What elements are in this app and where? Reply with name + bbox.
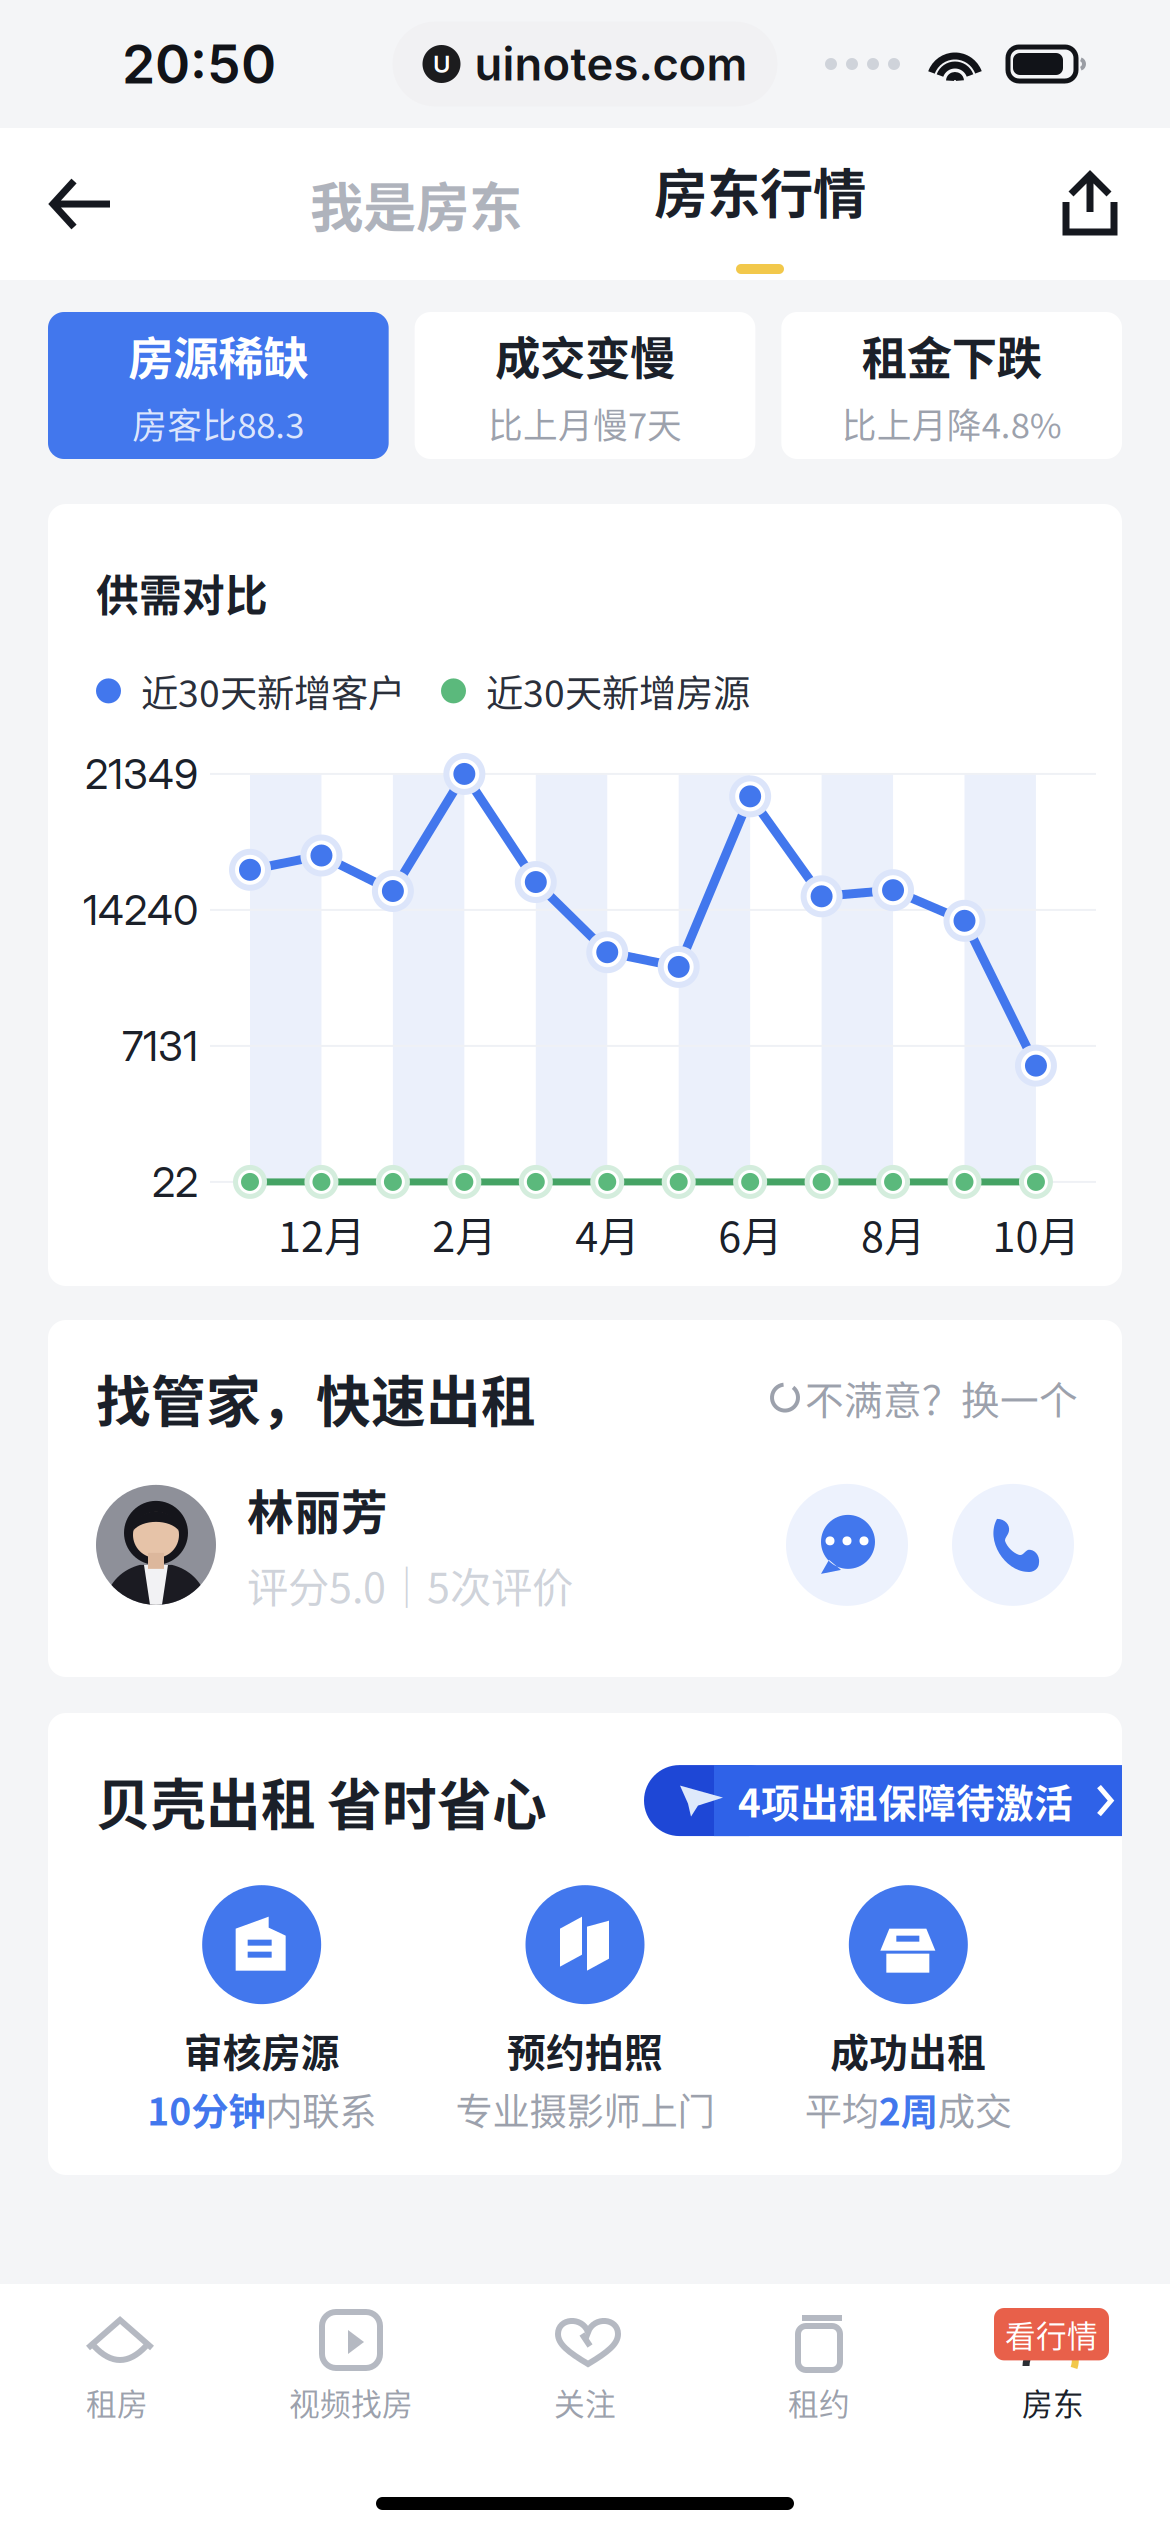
staticText: 成交变慢 bbox=[495, 323, 675, 388]
button[interactable]: 4项出租保障待激活 bbox=[644, 1765, 1122, 1836]
staticText: 平均 bbox=[805, 2082, 879, 2136]
staticText: 21349 bbox=[85, 749, 198, 799]
staticText: 林丽芳 bbox=[247, 1475, 388, 1543]
staticText: 4月 bbox=[575, 1204, 639, 1264]
staticText: 评分5.0｜5次评价 bbox=[247, 1555, 573, 1615]
staticText: 6月 bbox=[718, 1204, 782, 1264]
staticText: 近30天新增客户 bbox=[141, 664, 405, 718]
staticText: 22 bbox=[152, 1157, 198, 1207]
staticText: 2周 bbox=[879, 2082, 938, 2136]
button[interactable]: 不满意？换一个 bbox=[769, 1370, 1078, 1426]
staticText: 比上月降4.8% bbox=[842, 398, 1062, 448]
button[interactable]: 关注 bbox=[468, 2308, 702, 2424]
staticText: 租金下跌 bbox=[862, 323, 1042, 388]
staticText: 房东 bbox=[1022, 2380, 1084, 2424]
staticText: 内联系 bbox=[265, 2082, 376, 2136]
staticText: 8月 bbox=[861, 1204, 925, 1264]
button[interactable]: 房源稀缺 bbox=[48, 312, 389, 459]
staticText: 14240 bbox=[83, 885, 198, 935]
staticText: 比上月慢7天 bbox=[488, 398, 682, 448]
button[interactable]: 租约 bbox=[702, 2308, 936, 2424]
staticText: 找管家，快速出租 bbox=[96, 1358, 536, 1437]
staticText: 租房 bbox=[86, 2380, 148, 2424]
staticText: 供需对比 bbox=[96, 562, 268, 624]
button[interactable]: 返回 bbox=[0, 130, 154, 278]
staticText: uinotes.com bbox=[474, 37, 747, 91]
button[interactable]: 看行情 bbox=[936, 2308, 1170, 2424]
staticText: U bbox=[433, 49, 450, 78]
button[interactable]: 视频找房 bbox=[234, 2308, 468, 2424]
staticText: 20:50 bbox=[122, 32, 276, 96]
staticText: 不满意？换一个 bbox=[805, 1370, 1078, 1426]
button[interactable]: 房东行情 bbox=[638, 134, 882, 274]
button[interactable]: 租房 bbox=[0, 2308, 234, 2424]
staticText: 12月 bbox=[278, 1204, 365, 1264]
staticText: 贝壳出租 省时省心 bbox=[96, 1761, 547, 1840]
button[interactable]: 发消息 bbox=[786, 1484, 908, 1606]
staticText: 视频找房 bbox=[289, 2380, 413, 2424]
staticText: 房源稀缺 bbox=[128, 323, 308, 388]
button[interactable]: 分享 bbox=[1022, 130, 1170, 278]
staticText: 10月 bbox=[992, 1204, 1079, 1264]
staticText: 预约拍照 bbox=[507, 2022, 663, 2078]
staticText: 2月 bbox=[432, 1204, 496, 1264]
staticText: 我是房东 bbox=[310, 165, 522, 243]
staticText: 专业摄影师上门 bbox=[455, 2082, 714, 2136]
staticText: 租约 bbox=[788, 2380, 850, 2424]
button[interactable]: 租金下跌 bbox=[781, 312, 1122, 459]
staticText: 审核房源 bbox=[184, 2022, 340, 2078]
staticText: 4项出租保障待激活 bbox=[738, 1773, 1073, 1829]
staticText: 房东行情 bbox=[654, 152, 866, 229]
staticText: 看行情 bbox=[1005, 2312, 1098, 2356]
button[interactable]: 成交变慢 bbox=[415, 312, 755, 459]
staticText: 关注 bbox=[554, 2380, 616, 2424]
staticText: 10分钟 bbox=[147, 2082, 265, 2136]
staticText: 成功出租 bbox=[830, 2022, 986, 2078]
staticText: 成交 bbox=[938, 2082, 1012, 2136]
staticText: 房客比88.3 bbox=[132, 398, 304, 448]
staticText: 近30天新增房源 bbox=[486, 664, 750, 718]
button[interactable]: 打电话 bbox=[952, 1484, 1074, 1606]
button[interactable]: 我是房东 bbox=[294, 125, 538, 283]
staticText: 7131 bbox=[122, 1021, 198, 1071]
